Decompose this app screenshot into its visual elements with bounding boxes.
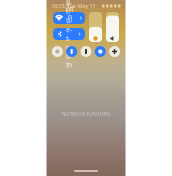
button[interactable]: Do Not Disturb [80,46,91,57]
staticText: 10:15 Tue, May 11 [51,2,95,10]
staticText: Bluetooth [66,0,72,69]
button[interactable]: Rotation Lock [95,46,106,57]
button[interactable]: Flashlight [66,46,77,57]
button[interactable]: Wi-Fi [53,12,85,24]
staticText: NO NOTIFICATIONS [61,110,110,117]
button[interactable]: Bluetooth [53,28,85,40]
staticText: Wi-Fi [65,5,73,31]
button[interactable]: More [109,46,120,57]
button[interactable]: Airplane Mode [52,46,63,57]
